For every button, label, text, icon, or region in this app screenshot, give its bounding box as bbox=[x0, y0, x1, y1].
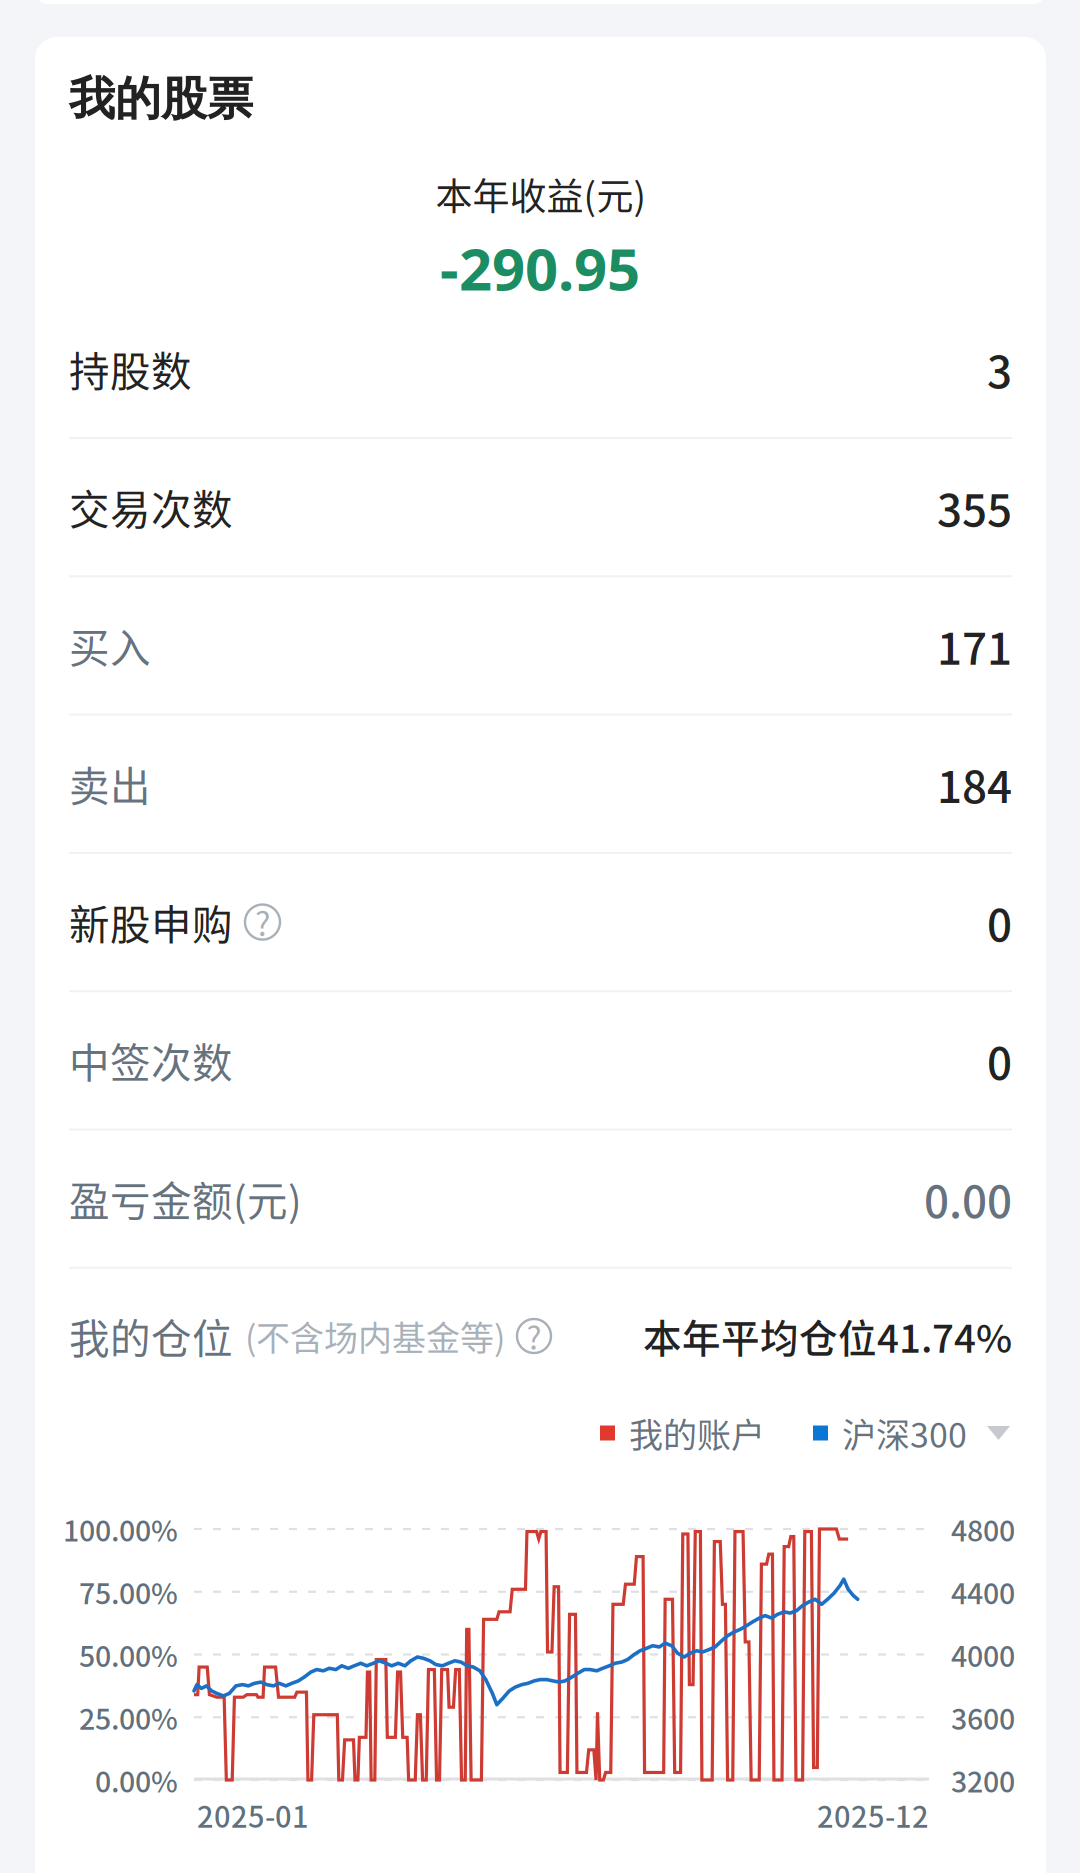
staticText: 中签次数 bbox=[69, 1031, 233, 1090]
staticText: 本年收益(元) bbox=[435, 167, 646, 221]
staticText: ? bbox=[526, 1313, 541, 1359]
staticText: 我的仓位 bbox=[69, 1307, 233, 1365]
staticText: 4000 bbox=[951, 1634, 1015, 1675]
button[interactable]: 中签次数 bbox=[69, 991, 1012, 1129]
staticText: ? bbox=[255, 898, 270, 946]
staticText: 100.00% bbox=[63, 1508, 178, 1550]
button[interactable]: 沪深300 bbox=[813, 1408, 1010, 1458]
staticText: 4800 bbox=[951, 1508, 1015, 1550]
staticText: 卖出 bbox=[69, 754, 151, 813]
staticText: 2025-01 bbox=[197, 1794, 309, 1836]
staticText: 本年平均仓位41.74% bbox=[643, 1308, 1012, 1364]
button[interactable]: 买入 bbox=[69, 576, 1012, 715]
button[interactable]: 我的账户 bbox=[600, 1408, 765, 1458]
button[interactable]: 交易次数 bbox=[69, 438, 1012, 576]
staticText: 184 bbox=[937, 752, 1012, 816]
staticText: 交易次数 bbox=[69, 478, 233, 536]
staticText: 4400 bbox=[951, 1571, 1015, 1612]
staticText: 0 bbox=[987, 1028, 1012, 1092]
button[interactable]: 我的仓位 bbox=[69, 1267, 551, 1405]
staticText: 我的账户 bbox=[629, 1408, 765, 1458]
staticText: 买入 bbox=[69, 616, 151, 675]
staticText: 171 bbox=[937, 614, 1012, 677]
staticText: 3200 bbox=[951, 1759, 1015, 1801]
staticText: 50.00% bbox=[79, 1634, 178, 1675]
staticText: 3600 bbox=[951, 1697, 1015, 1738]
staticText: (不含场内基金等) bbox=[245, 1311, 505, 1361]
staticText: 355 bbox=[937, 475, 1012, 539]
staticText: 0 bbox=[987, 890, 1012, 954]
staticText: -290.95 bbox=[440, 228, 640, 307]
staticText: 新股申购 bbox=[69, 893, 233, 951]
staticText: 持股数 bbox=[69, 339, 192, 398]
button[interactable]: 卖出 bbox=[69, 715, 1012, 853]
staticText: 25.00% bbox=[79, 1697, 178, 1738]
button[interactable]: 本年平均仓位41.74% bbox=[643, 1267, 1012, 1405]
button[interactable]: 新股申购 bbox=[69, 853, 1012, 991]
staticText: 沪深300 bbox=[842, 1408, 967, 1458]
staticText: 我的股票 bbox=[69, 70, 253, 128]
staticText: 75.00% bbox=[79, 1571, 178, 1612]
staticText: 2025-12 bbox=[817, 1794, 929, 1836]
staticText: 0.00 bbox=[924, 1167, 1012, 1230]
staticText: 盈亏金额(元) bbox=[69, 1169, 302, 1228]
staticText: 3 bbox=[987, 337, 1012, 401]
button[interactable]: 盈亏金额(元) bbox=[69, 1129, 1012, 1268]
button[interactable]: 持股数 bbox=[69, 300, 1012, 438]
staticText: 0.00% bbox=[95, 1759, 178, 1801]
